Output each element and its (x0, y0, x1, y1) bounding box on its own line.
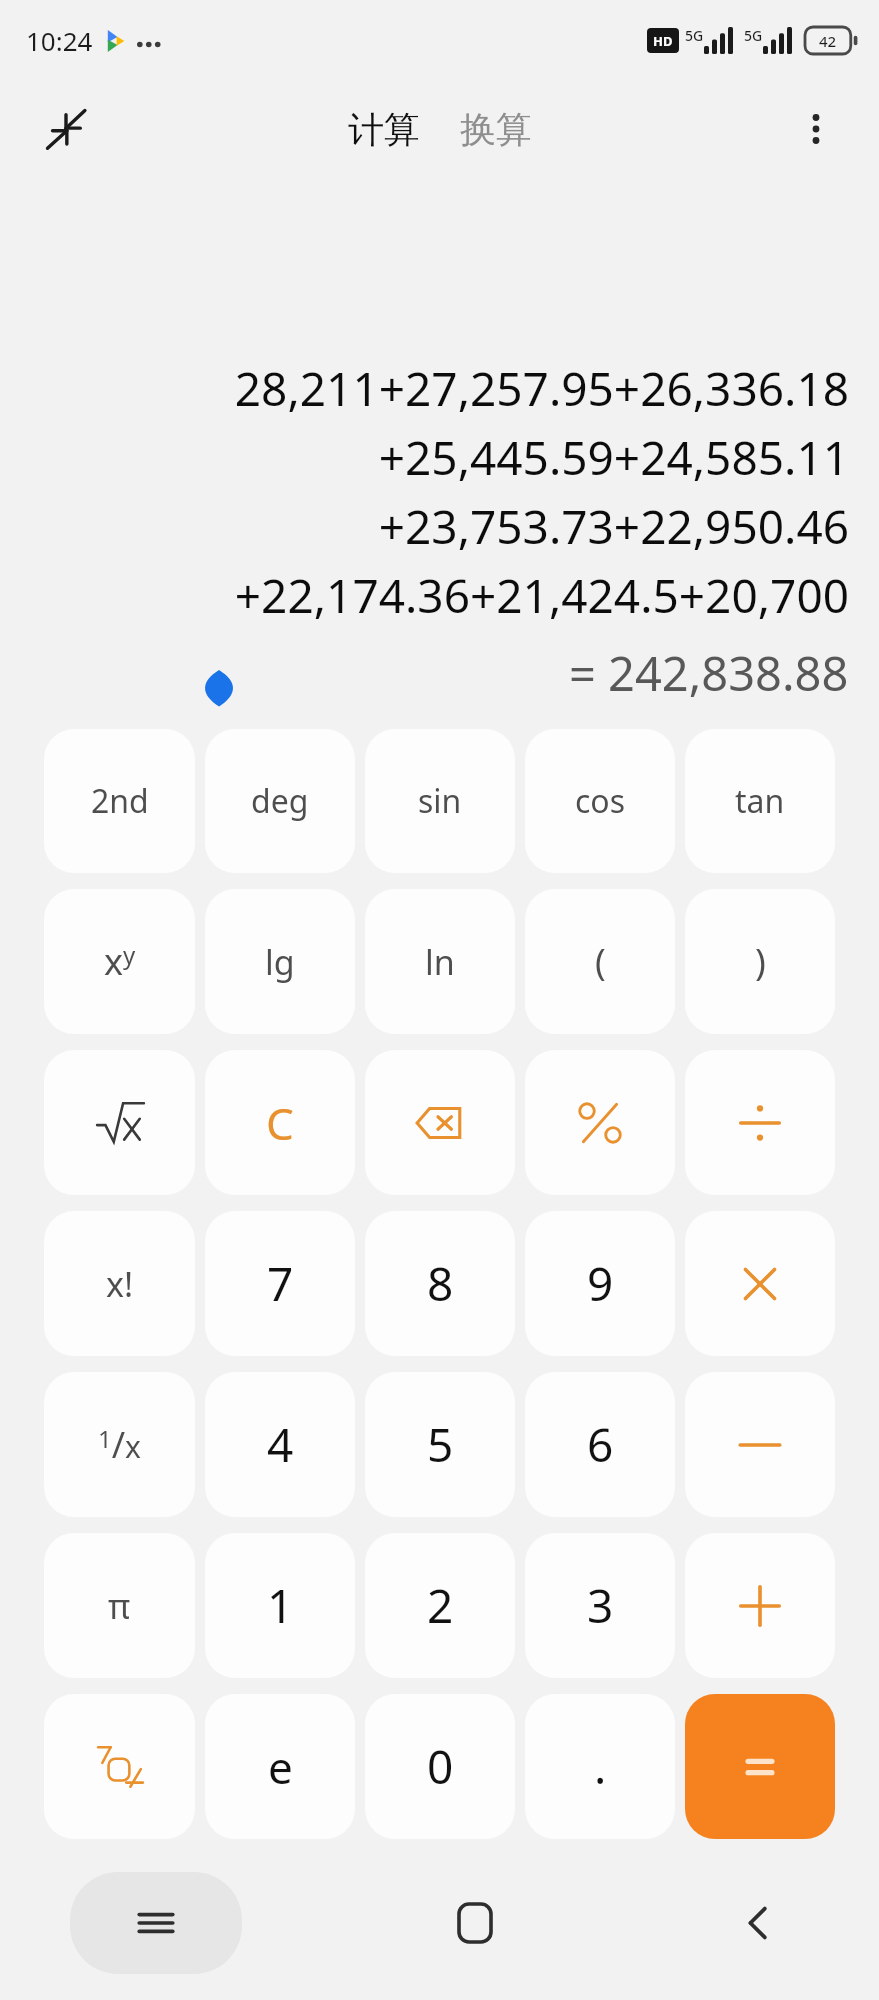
staticText: +23,753.73+22,950.46 (378, 495, 849, 558)
button[interactable]: Divide (685, 1050, 835, 1195)
button[interactable]: 1 (205, 1533, 355, 1678)
button[interactable]: deg (205, 729, 355, 873)
button[interactable]: xy (44, 889, 195, 1034)
button[interactable]: Square root (44, 1050, 195, 1195)
staticText: = 242,838.88 (569, 641, 849, 705)
staticText: π (108, 1583, 131, 1629)
button[interactable]: 5 (365, 1372, 515, 1517)
button[interactable]: C (205, 1050, 355, 1195)
button[interactable]: Home (424, 1872, 526, 1974)
button[interactable]: ( (525, 889, 675, 1034)
button[interactable]: . (525, 1694, 675, 1839)
staticText: cos (575, 779, 626, 823)
button[interactable]: 换算 (452, 99, 540, 160)
button[interactable]: sin (365, 729, 515, 873)
staticText: 28,211+27,257.95+26,336.18 (234, 357, 849, 420)
button[interactable]: Equals (685, 1694, 835, 1839)
staticText: 计算 (348, 107, 420, 152)
staticText: 7 (267, 1252, 294, 1315)
staticText: 1/x (98, 1420, 141, 1469)
button[interactable]: Unit conversion (44, 1694, 195, 1839)
staticText: x! (106, 1261, 134, 1307)
staticText: 5G (685, 26, 704, 45)
staticText: xy (104, 937, 136, 986)
staticText: 0 (427, 1735, 454, 1798)
staticText: 42 (819, 31, 837, 51)
button[interactable]: Recents (70, 1872, 242, 1974)
button[interactable]: Plus (685, 1533, 835, 1678)
button[interactable]: 3 (525, 1533, 675, 1678)
staticText: HD (653, 32, 673, 50)
staticText: sin (418, 779, 462, 823)
staticText: tan (735, 779, 785, 823)
button[interactable]: ) (685, 889, 835, 1034)
button[interactable]: 计算 (340, 99, 428, 160)
staticText: 2nd (91, 779, 149, 823)
staticText: ( (595, 937, 606, 986)
button[interactable]: 7 (205, 1211, 355, 1356)
staticText: e (268, 1737, 293, 1797)
button[interactable]: 2 (365, 1533, 515, 1678)
button[interactable]: Multiply (685, 1211, 835, 1356)
staticText: deg (251, 779, 309, 823)
button[interactable]: cos (525, 729, 675, 873)
button[interactable]: 2nd (44, 729, 195, 873)
staticText: 5 (427, 1413, 454, 1476)
staticText: 8 (427, 1252, 454, 1315)
button[interactable]: 0 (365, 1694, 515, 1839)
staticText: ) (755, 937, 766, 986)
staticText: C (266, 1093, 294, 1153)
button[interactable]: e (205, 1694, 355, 1839)
button[interactable]: Back (707, 1872, 809, 1974)
staticText: ln (425, 939, 455, 985)
button[interactable]: Collapse (36, 99, 96, 159)
staticText: 换算 (460, 107, 532, 152)
staticText: 6 (587, 1413, 614, 1476)
staticText: +25,445.59+24,585.11 (378, 426, 849, 489)
staticText: 9 (587, 1252, 614, 1315)
staticText: +22,174.36+21,424.5+20,700 (234, 564, 849, 627)
button[interactable]: 1/x (44, 1372, 195, 1517)
button[interactable]: Percent (525, 1050, 675, 1195)
button[interactable]: Backspace (365, 1050, 515, 1195)
staticText: 4 (267, 1413, 294, 1476)
button[interactable]: x! (44, 1211, 195, 1356)
staticText: 3 (587, 1574, 614, 1637)
button[interactable]: More options (787, 100, 845, 158)
button[interactable]: 4 (205, 1372, 355, 1517)
button[interactable]: π (44, 1533, 195, 1678)
staticText: 10:24 (26, 23, 93, 58)
staticText: 1 (267, 1574, 294, 1637)
staticText: lg (265, 939, 295, 985)
button[interactable]: Minus (685, 1372, 835, 1517)
staticText: . (594, 1735, 607, 1798)
button[interactable]: ln (365, 889, 515, 1034)
staticText: 5G (744, 26, 763, 45)
button[interactable]: 6 (525, 1372, 675, 1517)
button[interactable]: lg (205, 889, 355, 1034)
button[interactable]: 9 (525, 1211, 675, 1356)
button[interactable]: tan (685, 729, 835, 873)
staticText: 2 (427, 1574, 454, 1637)
button[interactable]: 8 (365, 1211, 515, 1356)
